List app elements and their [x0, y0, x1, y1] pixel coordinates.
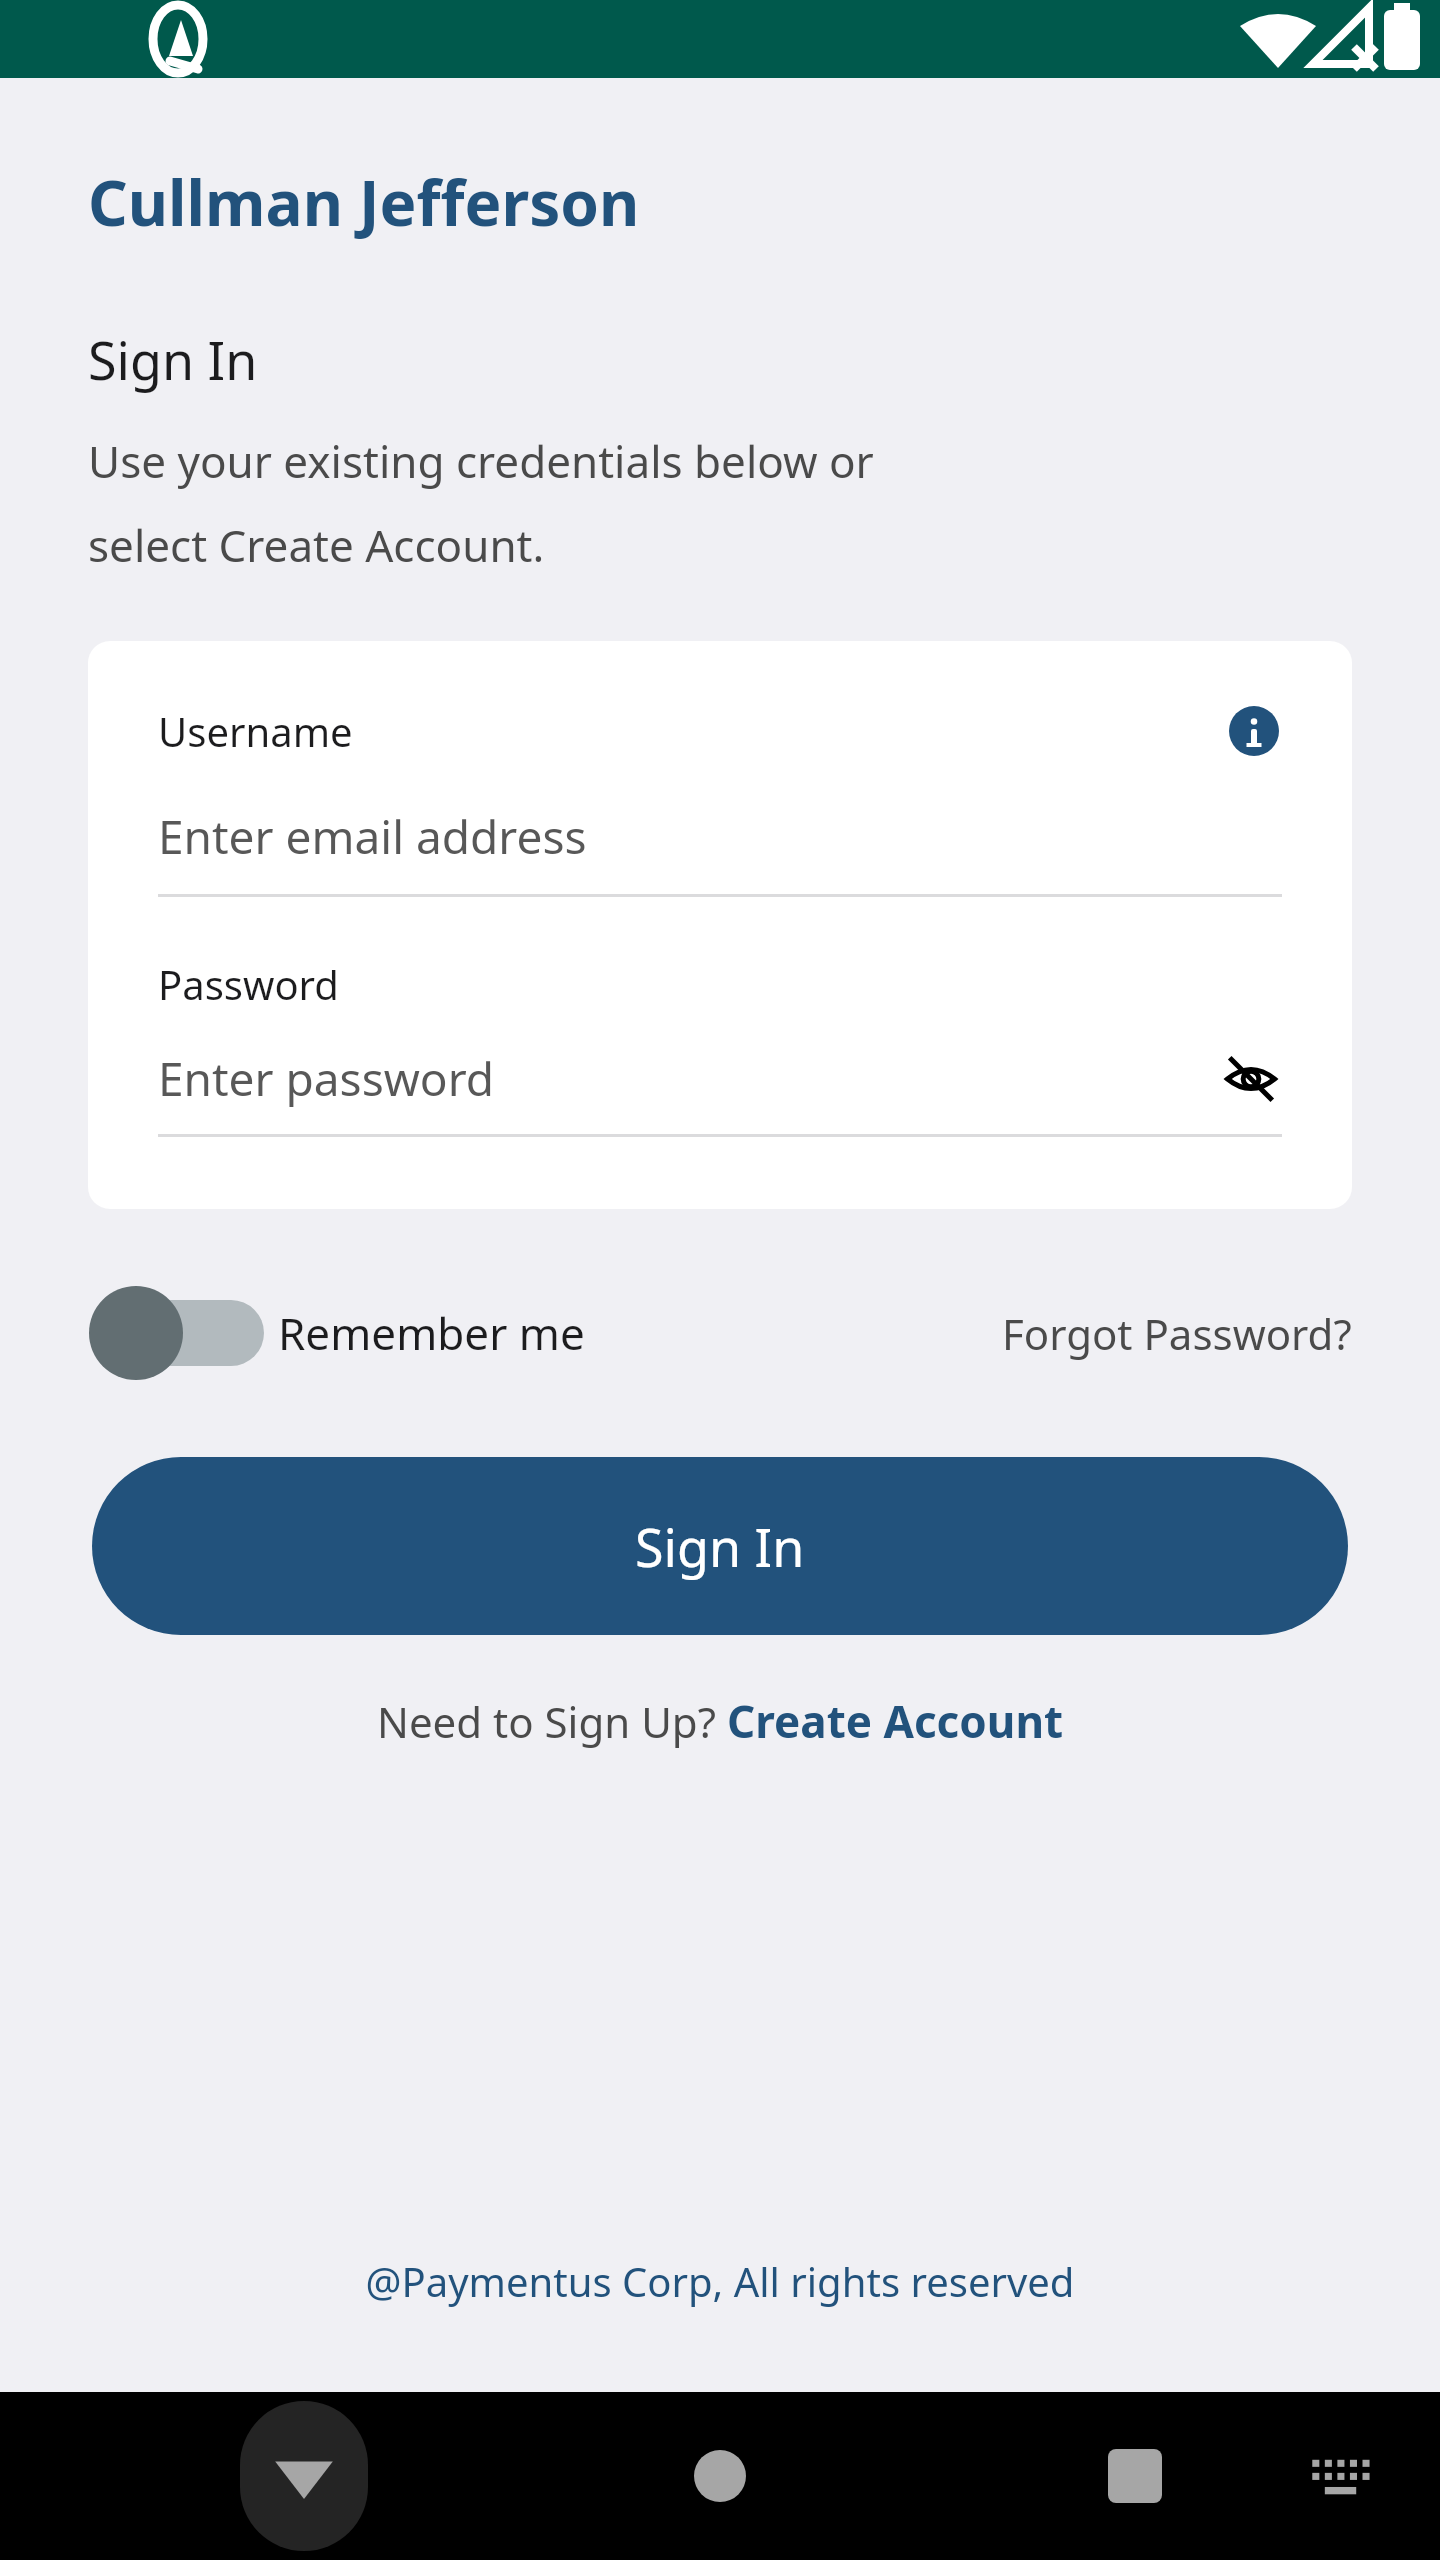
button[interactable]: Forgot Password? — [1002, 1305, 1352, 1362]
staticText: Sign In — [635, 1511, 805, 1582]
staticText: Create Account — [727, 1691, 1064, 1751]
button[interactable]: Recent apps — [1080, 2421, 1190, 2531]
staticText: @Paymentus Corp, All rights reserved — [0, 2254, 1440, 2308]
staticText: Username — [158, 704, 353, 758]
staticText: Remember me — [278, 1303, 585, 1363]
button[interactable]: Create Account — [727, 1691, 1064, 1751]
button[interactable]: Home — [665, 2421, 775, 2531]
staticText: Forgot Password? — [1002, 1305, 1352, 1362]
button[interactable]: Back — [240, 2401, 368, 2551]
button[interactable]: Remember me toggle — [88, 1283, 585, 1383]
staticText: Enter password — [158, 1047, 495, 1110]
button[interactable]: Username information — [1226, 703, 1282, 759]
staticText: Need to Sign Up? — [377, 1693, 727, 1750]
staticText: Use your existing credentials below or s… — [88, 431, 874, 575]
button[interactable]: Keyboard — [1290, 2426, 1390, 2526]
button[interactable]: Show password — [1220, 1048, 1282, 1110]
staticText: Password — [158, 957, 339, 1011]
staticText: Cullman Jefferson — [88, 160, 640, 244]
staticText: Sign In — [88, 324, 258, 395]
staticText: Enter email address — [158, 805, 587, 868]
button[interactable]: Sign In — [92, 1457, 1348, 1635]
